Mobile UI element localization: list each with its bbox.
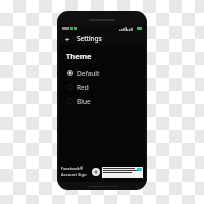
button[interactable]: Facebook® bbox=[59, 165, 145, 179]
staticText: Account Sign up bbox=[61, 172, 92, 178]
staticText: Default bbox=[77, 69, 100, 78]
staticText: Settings bbox=[77, 34, 102, 43]
button[interactable]: Back bbox=[62, 34, 72, 44]
staticText: Blue bbox=[77, 97, 91, 106]
staticText: Red bbox=[77, 83, 89, 92]
button[interactable] bbox=[102, 167, 143, 178]
staticText: Theme bbox=[66, 51, 92, 61]
button[interactable]: Default bbox=[59, 66, 145, 80]
button[interactable]: Red bbox=[59, 80, 145, 94]
staticText: Facebook® bbox=[61, 166, 84, 172]
button[interactable]: Blue bbox=[59, 94, 145, 108]
